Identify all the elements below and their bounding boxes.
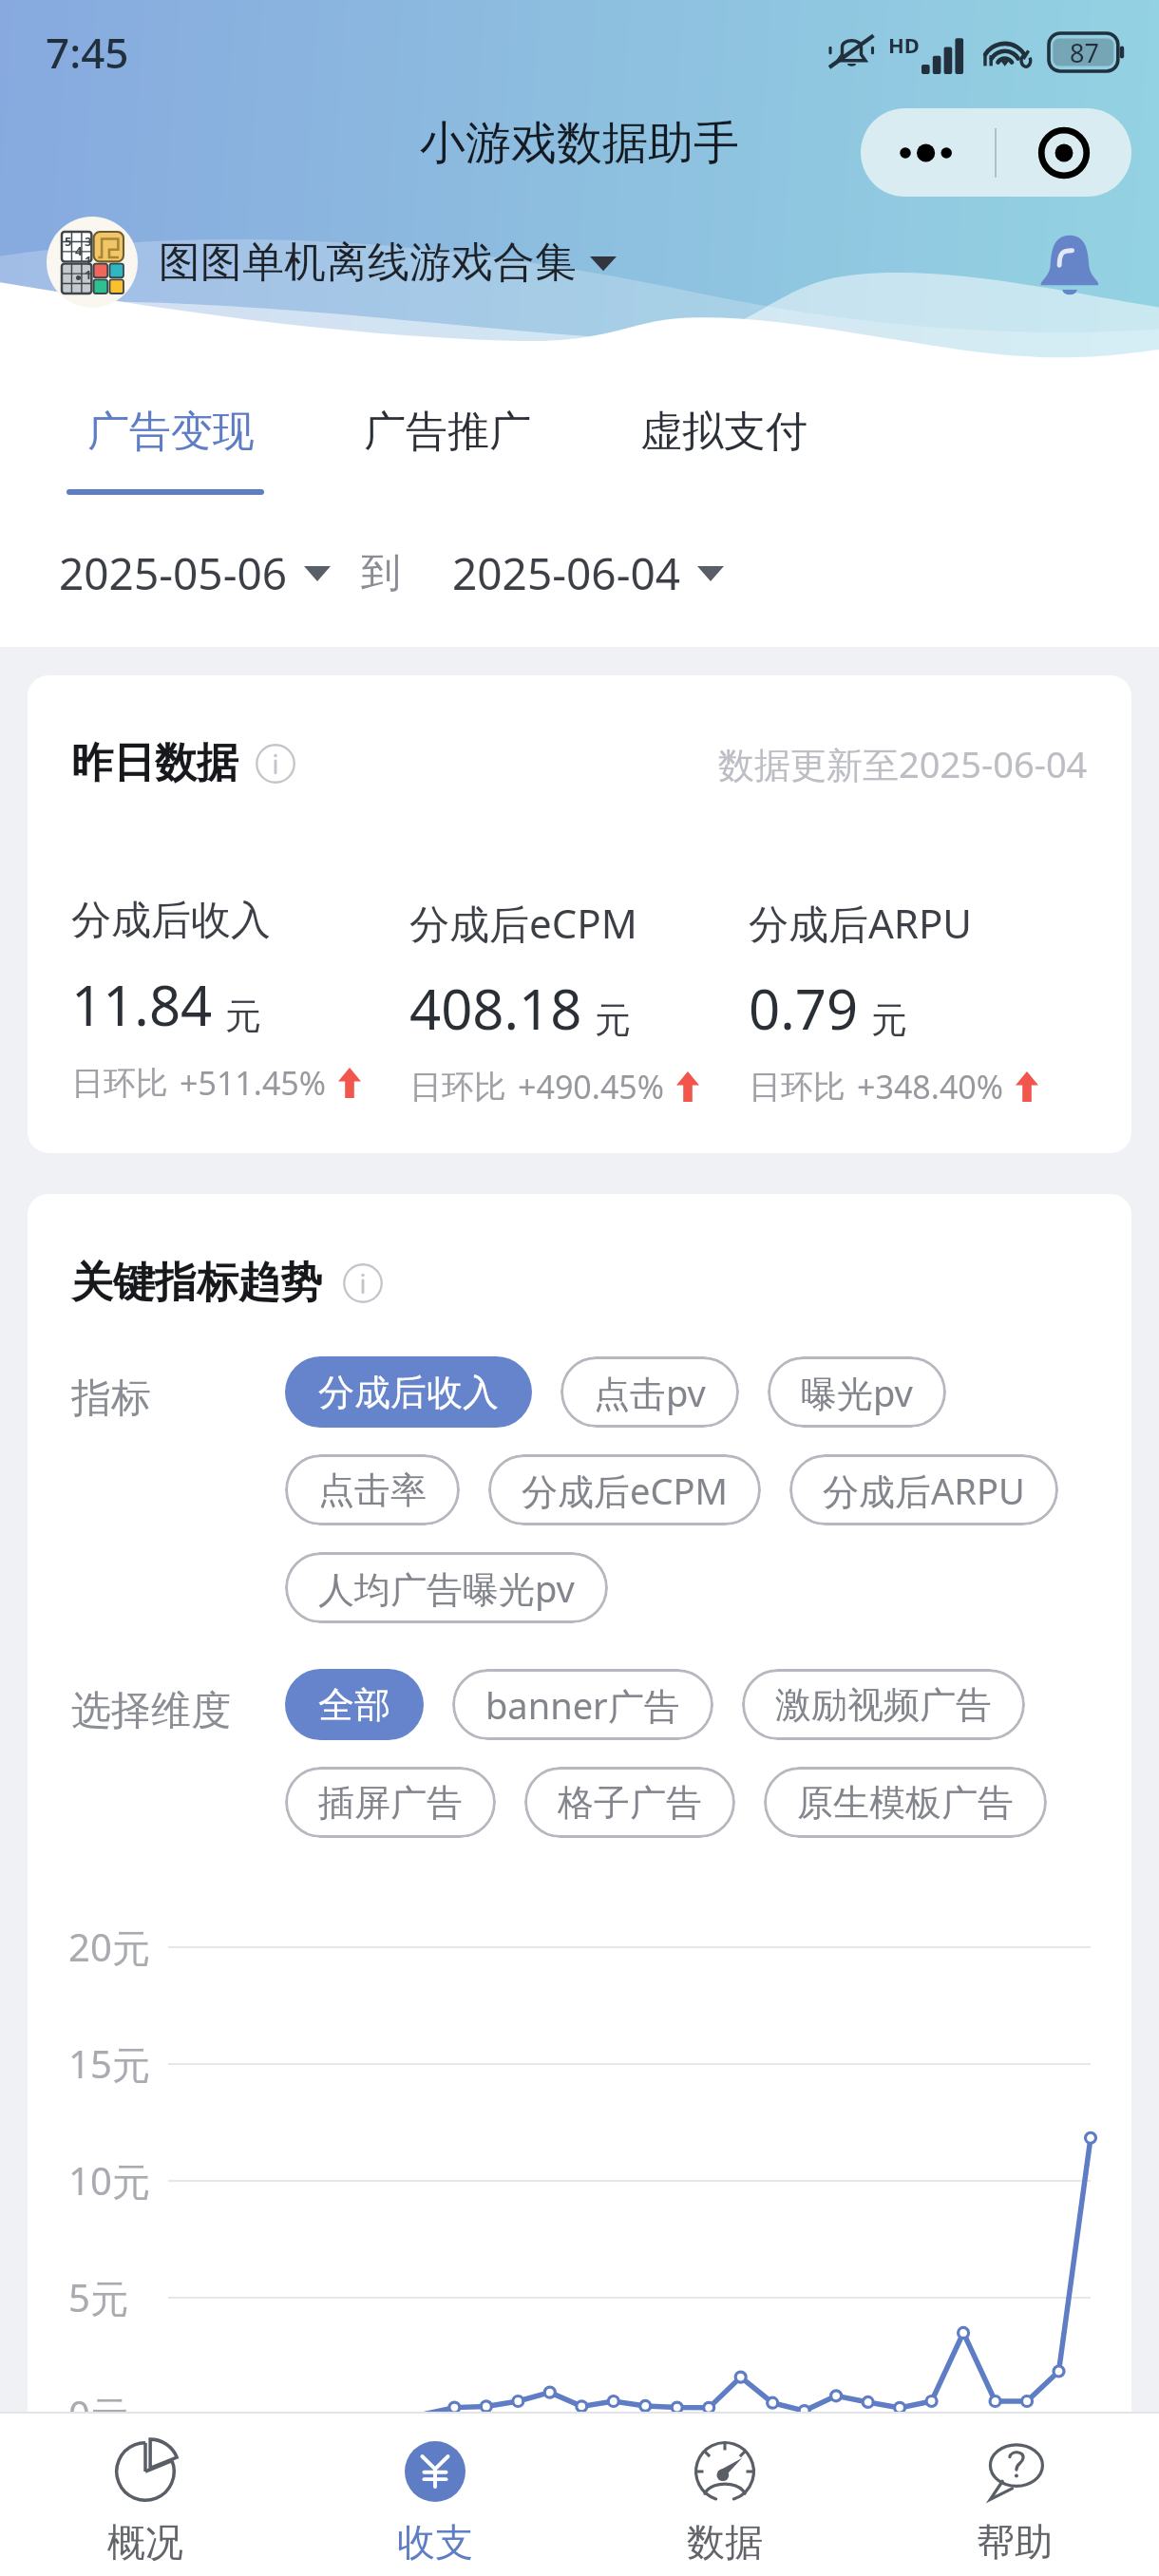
- staticText: 虚拟支付: [640, 406, 807, 458]
- button[interactable]: 分成后ARPU: [789, 1454, 1058, 1525]
- staticText: 1: [85, 252, 92, 269]
- staticText: 4: [75, 242, 83, 259]
- button[interactable]: 帮助: [869, 2414, 1159, 2576]
- staticText: 15元: [68, 2037, 150, 2090]
- staticText: 数据: [687, 2518, 763, 2566]
- button[interactable]: banner广告: [452, 1669, 713, 1740]
- button[interactable]: 格子广告: [524, 1767, 735, 1838]
- staticText: 帮助: [977, 2518, 1053, 2566]
- button[interactable]: 曝光pv: [768, 1356, 946, 1428]
- staticText: 分成后eCPM: [409, 896, 637, 950]
- staticText: 点击率: [318, 1468, 427, 1513]
- staticText: 日环比: [749, 1067, 845, 1108]
- staticText: 11.84: [71, 967, 213, 1042]
- staticText: 10元: [68, 2154, 150, 2207]
- button[interactable]: 点击pv: [560, 1356, 739, 1428]
- staticText: 收支: [397, 2518, 473, 2566]
- staticText: 小游戏数据助手: [420, 115, 739, 172]
- staticText: 元: [871, 997, 907, 1043]
- staticText: 分成后ARPU: [823, 1466, 1025, 1515]
- staticText: 数据更新至2025-06-04: [718, 739, 1088, 788]
- staticText: 插屏广告: [318, 1780, 463, 1826]
- button[interactable]: 概况: [0, 2414, 290, 2576]
- staticText: 0.79: [749, 971, 859, 1046]
- staticText: 昨日数据: [71, 737, 238, 789]
- button[interactable]: 激励视频广告: [742, 1669, 1025, 1740]
- button[interactable]: 全部: [285, 1669, 424, 1740]
- button[interactable]: 插屏广告: [285, 1767, 496, 1838]
- staticText: 关键指标趋势: [71, 1257, 322, 1309]
- staticText: 5元: [68, 2271, 128, 2323]
- staticText: 7:45: [46, 24, 129, 81]
- staticText: 20元: [68, 1921, 150, 1973]
- staticText: 2025-05-06: [59, 543, 288, 603]
- staticText: 87: [1070, 35, 1099, 70]
- staticText: 曝光pv: [801, 1368, 913, 1417]
- button[interactable]: 广告变现: [72, 392, 270, 471]
- staticText: 选择维度: [71, 1686, 285, 1736]
- staticText: 1: [85, 266, 92, 283]
- button[interactable]: 收支: [290, 2414, 579, 2576]
- staticText: 原生模板广告: [797, 1780, 1014, 1826]
- staticText: 日环比: [409, 1067, 506, 1108]
- staticText: 0元: [68, 2388, 128, 2440]
- button[interactable]: 图图单机离线游戏合集: [159, 237, 617, 289]
- staticText: HD: [888, 30, 920, 59]
- button[interactable]: 人均广告曝光pv: [285, 1552, 608, 1623]
- staticText: 概况: [107, 2518, 183, 2566]
- staticText: 图图单机离线游戏合集: [159, 237, 577, 289]
- staticText: 广告推广: [364, 406, 531, 458]
- button[interactable]: 分成后收入: [285, 1356, 532, 1428]
- staticText: +490.45%: [518, 1065, 665, 1108]
- staticText: 激励视频广告: [775, 1682, 992, 1728]
- staticText: +511.45%: [180, 1061, 327, 1105]
- staticText: 元: [225, 994, 261, 1039]
- button[interactable]: 2025-06-04: [452, 543, 724, 603]
- staticText: 元: [595, 997, 631, 1043]
- staticText: +348.40%: [857, 1065, 1004, 1108]
- staticText: 408.18: [409, 971, 582, 1046]
- staticText: 分成后eCPM: [522, 1466, 728, 1515]
- staticText: 广告变现: [87, 406, 255, 458]
- button[interactable]: 分成后eCPM: [488, 1454, 761, 1525]
- button[interactable]: More options: [861, 108, 995, 197]
- button[interactable]: Close mini program: [997, 108, 1131, 197]
- staticText: 到: [361, 548, 401, 598]
- button[interactable]: 点击率: [285, 1454, 460, 1525]
- staticText: 分成后ARPU: [749, 896, 973, 950]
- staticText: 分成后收入: [71, 896, 271, 946]
- staticText: 人均广告曝光pv: [318, 1563, 575, 1613]
- staticText: 点击pv: [594, 1368, 706, 1417]
- staticText: 2025-06-04: [452, 543, 681, 603]
- staticText: 格子广告: [558, 1780, 702, 1826]
- staticText: 分成后收入: [318, 1370, 499, 1415]
- staticText: 3: [85, 233, 92, 250]
- staticText: 全部: [318, 1682, 390, 1728]
- staticText: banner广告: [485, 1680, 680, 1730]
- staticText: 指标: [71, 1373, 285, 1424]
- staticText: 5: [65, 233, 72, 250]
- staticText: 日环比: [71, 1063, 168, 1104]
- button[interactable]: 2025-05-06: [59, 543, 331, 603]
- button[interactable]: 数据: [579, 2414, 869, 2576]
- button[interactable]: Notifications: [1035, 227, 1105, 297]
- button[interactable]: 广告推广: [349, 392, 546, 471]
- button[interactable]: 原生模板广告: [764, 1767, 1047, 1838]
- button[interactable]: 虚拟支付: [625, 392, 823, 471]
